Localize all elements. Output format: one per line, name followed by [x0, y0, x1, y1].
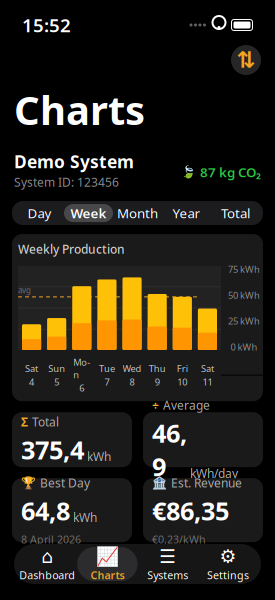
staticText: Year — [172, 204, 200, 222]
staticText: 46,9 — [152, 416, 187, 483]
staticText: Tue — [99, 362, 115, 375]
staticText: 🍃 — [181, 165, 196, 179]
staticText: Sun — [48, 362, 65, 375]
staticText: System ID: 123456 — [14, 174, 119, 190]
button[interactable]: Σ — [12, 412, 132, 467]
button[interactable]: ⌂ — [17, 547, 77, 581]
staticText: ⌂ — [41, 546, 53, 567]
staticText: ☰ — [159, 546, 176, 567]
button[interactable]: Month — [113, 204, 162, 222]
staticText: 9 — [155, 376, 160, 388]
staticText: 8 April 2026 — [21, 532, 81, 547]
staticText: Settings — [207, 568, 249, 582]
staticText: Dashboard — [19, 568, 75, 582]
staticText: Month — [117, 204, 158, 222]
button[interactable]: 📈 — [77, 547, 137, 581]
staticText: Weekly Production — [18, 241, 125, 257]
staticText: Total — [32, 414, 59, 430]
staticText: 7 — [104, 376, 109, 388]
staticText: Σ — [21, 414, 28, 430]
staticText: Charts — [90, 568, 124, 582]
staticText: 6 — [79, 382, 84, 394]
staticText: avg — [18, 285, 31, 295]
staticText: 🏆 — [21, 476, 36, 490]
staticText: Charts — [14, 83, 145, 136]
staticText: 🏦 — [152, 476, 167, 490]
staticText: Est. Revenue — [171, 475, 242, 491]
staticText: 0 kWh — [230, 341, 257, 353]
staticText: ÷ — [152, 397, 159, 413]
button[interactable]: Day — [15, 204, 64, 222]
button[interactable]: 🏆 — [12, 478, 132, 542]
button[interactable]: ☰ — [137, 547, 198, 581]
staticText: Sat — [201, 362, 214, 375]
button[interactable]: 🏦 — [143, 478, 263, 542]
staticText: Systems — [147, 568, 188, 582]
staticText: Fri — [177, 362, 188, 375]
staticText: 11 — [202, 376, 212, 388]
staticText: 87 kg CO₂ — [200, 163, 261, 181]
button[interactable]: Change units — [231, 45, 261, 75]
staticText: €86,35 — [152, 494, 229, 527]
staticText: Day — [27, 204, 51, 222]
staticText: 375,4 — [21, 433, 84, 466]
staticText: €0,23/kWh — [152, 532, 206, 547]
staticText: 50 kWh — [228, 289, 260, 301]
staticText: Best Day — [40, 475, 90, 491]
staticText: 4 — [29, 376, 34, 388]
button[interactable]: Week — [64, 204, 113, 222]
staticText: Week — [70, 204, 106, 222]
staticText: 📈 — [96, 546, 119, 567]
staticText: Thu — [149, 362, 166, 375]
staticText: kWh — [73, 509, 97, 525]
staticText: ⇅ — [236, 47, 255, 73]
staticText: 5 — [54, 376, 59, 388]
staticText: 8 — [130, 376, 135, 388]
button[interactable]: ⚙ — [198, 547, 258, 581]
staticText: Sat — [25, 362, 38, 375]
staticText: 15:52 — [22, 13, 71, 37]
staticText: ⚙ — [219, 546, 236, 567]
staticText: 64,8 — [21, 494, 70, 527]
staticText: Demo System — [14, 150, 134, 173]
staticText: Total — [221, 204, 250, 222]
button[interactable]: Year — [162, 204, 211, 222]
button[interactable]: ÷ — [143, 412, 263, 467]
button[interactable]: Total — [211, 204, 260, 222]
staticText: 25 kWh — [228, 315, 260, 327]
staticText: Wed — [123, 362, 142, 375]
staticText: kWh/day — [190, 465, 238, 481]
staticText: 10 — [177, 376, 187, 388]
staticText: Average — [163, 397, 210, 413]
staticText: kWh — [87, 448, 111, 464]
staticText: 75 kWh — [228, 263, 260, 275]
staticText: Mon — [73, 356, 90, 381]
